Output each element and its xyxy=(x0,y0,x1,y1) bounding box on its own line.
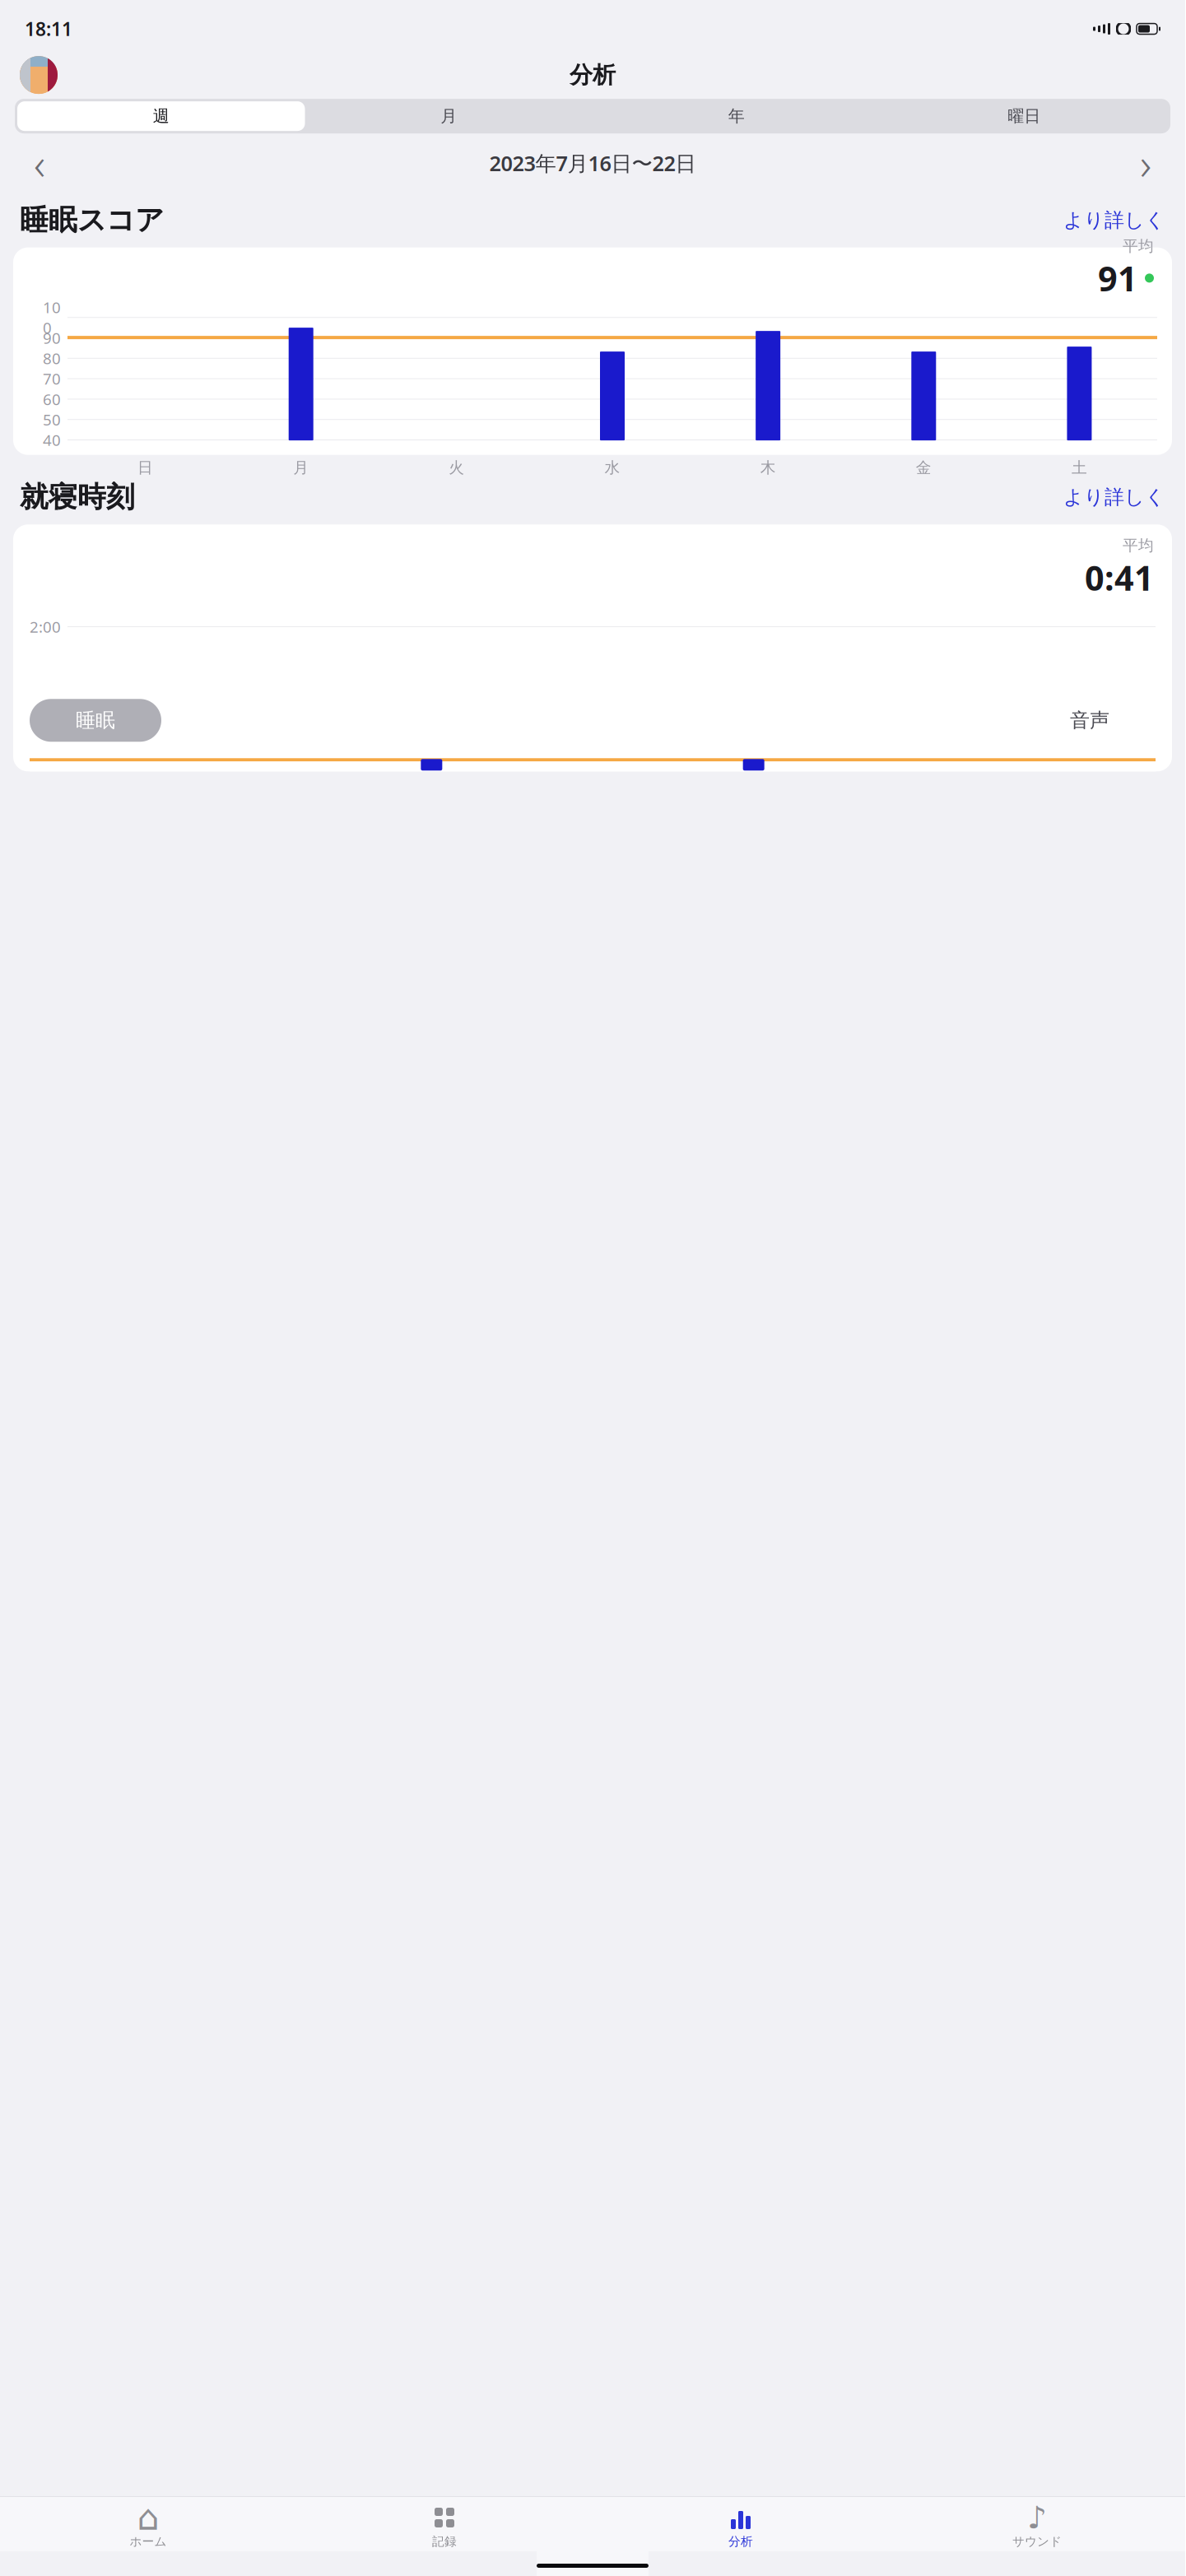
staticText: 日 xyxy=(138,458,153,477)
staticText: 曜日 xyxy=(1008,106,1041,126)
button[interactable]: 音声 xyxy=(1024,699,1156,742)
button[interactable]: 記録 xyxy=(296,2504,593,2551)
button[interactable]: 分析 xyxy=(593,2504,889,2551)
staticText: 0:41 xyxy=(1085,555,1154,600)
staticText: 70 xyxy=(43,368,61,389)
button[interactable]: ♪ xyxy=(889,2504,1185,2551)
staticText: より詳しく xyxy=(1063,208,1165,232)
staticText: 2:00 xyxy=(30,617,61,637)
staticText: ⌂ xyxy=(137,2498,159,2537)
staticText: 分析 xyxy=(570,61,616,89)
staticText: 40 xyxy=(43,430,61,450)
button[interactable]: 前の週 xyxy=(13,142,66,184)
staticText: 睡眠 xyxy=(76,708,115,732)
button[interactable]: 月 xyxy=(305,101,593,131)
button[interactable]: より詳しく xyxy=(1063,485,1165,509)
staticText: 土 xyxy=(1072,458,1087,477)
staticText: 金 xyxy=(916,458,932,477)
staticText: 91 xyxy=(1098,255,1137,301)
staticText: ‹ xyxy=(34,134,45,192)
button[interactable]: 睡眠 xyxy=(30,699,161,742)
button[interactable]: 次の週 xyxy=(1119,142,1172,184)
staticText: 100 xyxy=(43,297,61,338)
staticText: 60 xyxy=(43,389,61,409)
staticText: より詳しく xyxy=(1063,485,1165,509)
staticText: 月 xyxy=(293,458,309,477)
staticText: 月 xyxy=(441,106,457,126)
button[interactable]: 年 xyxy=(593,101,880,131)
staticText: 分析 xyxy=(728,2534,753,2549)
staticText: 火 xyxy=(449,458,465,477)
staticText: 80 xyxy=(43,348,61,368)
staticText: 記録 xyxy=(432,2534,457,2549)
staticText: ♪ xyxy=(1027,2500,1047,2535)
staticText: 平均 xyxy=(1123,237,1154,255)
button[interactable]: プロフィール xyxy=(20,56,58,94)
staticText: 50 xyxy=(43,409,61,430)
staticText: 就寝時刻 xyxy=(20,480,135,515)
staticText: 90 xyxy=(43,328,61,348)
staticText: › xyxy=(1140,134,1151,192)
staticText: ホーム xyxy=(130,2534,167,2549)
staticText: 音声 xyxy=(1070,708,1109,732)
staticText: 睡眠スコア xyxy=(20,203,164,238)
staticText: 平均 xyxy=(1123,536,1154,555)
staticText: サウンド xyxy=(1012,2534,1062,2549)
button[interactable]: より詳しく xyxy=(1063,208,1165,232)
staticText: 18:11 xyxy=(25,16,72,41)
button[interactable]: 曜日 xyxy=(880,101,1168,131)
staticText: 年 xyxy=(728,106,745,126)
staticText: 2023年7月16日〜22日 xyxy=(489,149,696,177)
staticText: 木 xyxy=(760,458,776,477)
staticText: 週 xyxy=(153,106,169,126)
staticText: 水 xyxy=(605,458,620,477)
button[interactable]: ⌂ xyxy=(0,2504,296,2551)
button[interactable]: 週 xyxy=(17,101,305,131)
